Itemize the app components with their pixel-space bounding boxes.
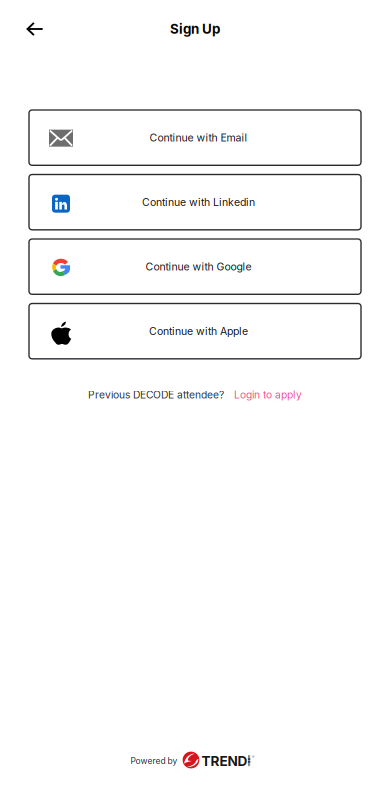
button[interactable]: Continue with Linkedin — [29, 174, 361, 230]
staticText: Continue with Apple — [149, 325, 248, 337]
staticText: Continue with Email — [149, 131, 247, 144]
button[interactable]: Continue with Google — [29, 239, 361, 294]
staticText: Login to apply — [234, 389, 302, 401]
button[interactable]: Back — [17, 11, 53, 47]
staticText: Sign Up — [170, 21, 220, 37]
button[interactable]: Login to apply — [224, 389, 302, 401]
staticText: Powered by — [130, 756, 177, 766]
button[interactable]: Continue with Apple — [29, 303, 361, 359]
staticText: Continue with Linkedin — [142, 196, 255, 208]
staticText: Continue with Google — [145, 260, 251, 273]
staticText: TREND — [201, 753, 247, 769]
staticText: Previous DECODE attendee? — [88, 389, 224, 401]
button[interactable]: Continue with Email — [29, 110, 361, 165]
